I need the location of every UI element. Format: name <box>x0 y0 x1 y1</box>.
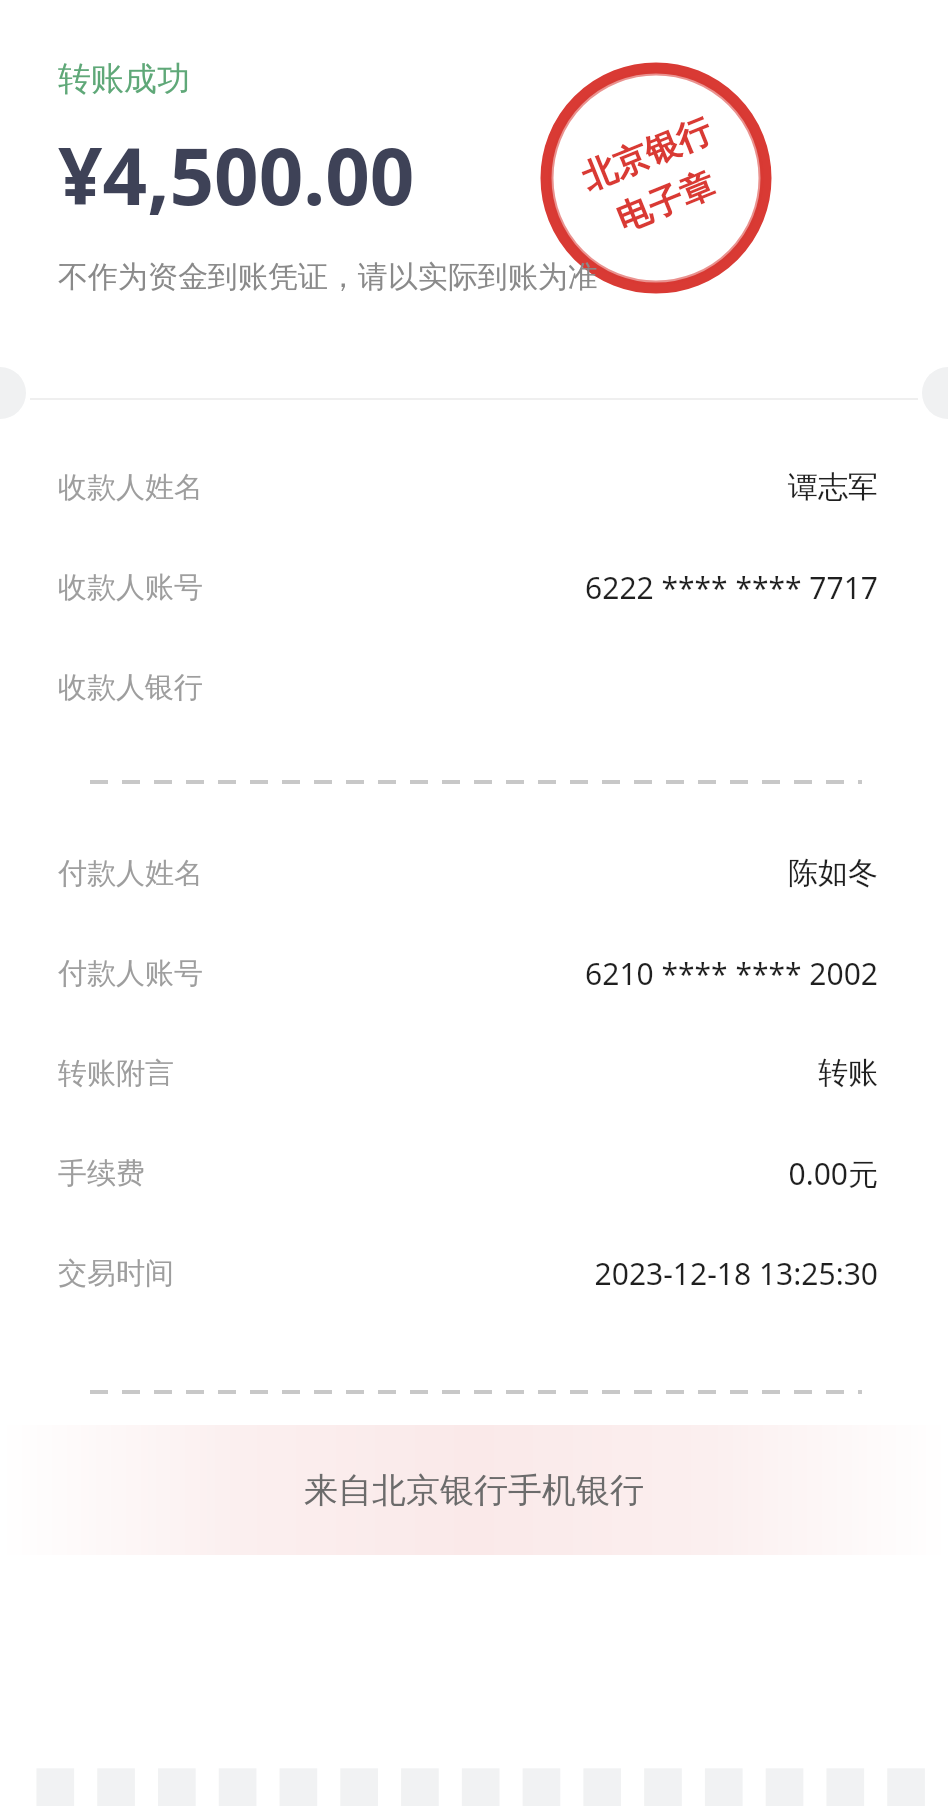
staticText: 不作为资金到账凭证，请以实际到账为准 <box>58 258 598 296</box>
staticText: 6222 **** **** 7717 <box>585 567 878 608</box>
button[interactable]: 付款人姓名 <box>0 823 948 923</box>
button[interactable]: 收款人姓名 <box>0 437 948 537</box>
staticText: 付款人账号 <box>58 955 203 992</box>
staticText: 交易时间 <box>58 1255 174 1292</box>
staticText: 0.00元 <box>788 1153 878 1194</box>
staticText: 转账附言 <box>58 1055 174 1092</box>
staticText: 付款人姓名 <box>58 855 203 892</box>
staticText: 转账 <box>818 1054 878 1092</box>
staticText: 收款人姓名 <box>58 469 203 506</box>
staticText: 来自北京银行手机银行 <box>304 1469 644 1512</box>
button[interactable]: 手续费 <box>0 1123 948 1223</box>
staticText: 手续费 <box>58 1155 145 1192</box>
staticText: 收款人账号 <box>58 569 203 606</box>
staticText: ¥4,500.00 <box>58 122 415 228</box>
staticText: 陈如冬 <box>788 854 878 892</box>
button[interactable]: 收款人银行 <box>0 637 948 737</box>
button[interactable]: 付款人账号 <box>0 923 948 1023</box>
staticText: 转账成功 <box>58 58 190 100</box>
staticText: 电子章 <box>610 163 721 241</box>
staticText: 北京银行 <box>575 109 717 200</box>
staticText: 收款人银行 <box>58 669 203 706</box>
staticText: 谭志军 <box>788 468 878 506</box>
staticText: 6210 **** **** 2002 <box>585 953 878 994</box>
staticText: 2023-12-18 13:25:30 <box>594 1253 878 1294</box>
button[interactable]: 交易时间 <box>0 1223 948 1323</box>
button[interactable]: 转账附言 <box>0 1023 948 1123</box>
button[interactable]: 收款人账号 <box>0 537 948 637</box>
